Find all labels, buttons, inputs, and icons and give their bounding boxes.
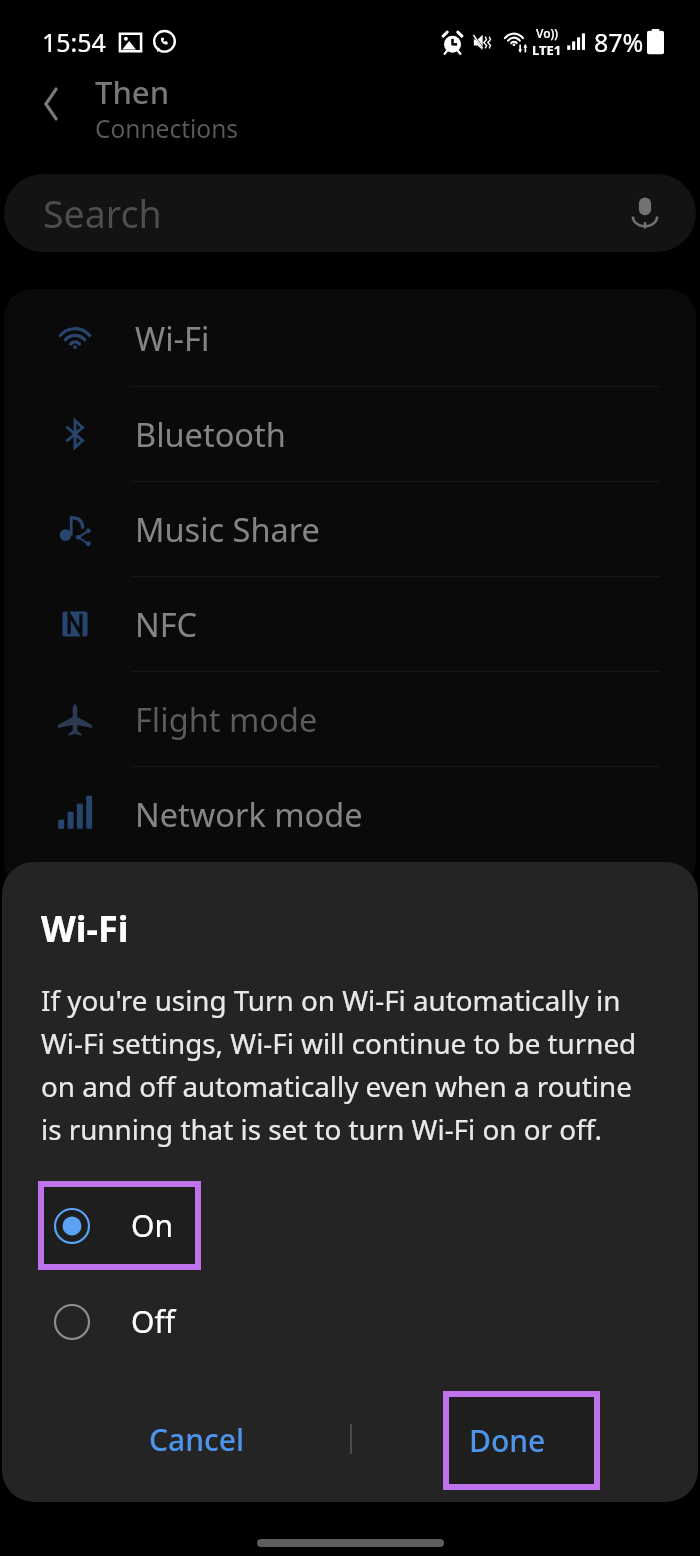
staticText: Network mode [135, 792, 363, 836]
staticText: Music Share [135, 507, 320, 551]
button[interactable]: Flight mode [4, 672, 696, 766]
staticText: On [131, 1205, 173, 1246]
staticText: If you're using Turn on Wi-Fi automatica… [41, 981, 637, 1148]
button[interactable]: Done [443, 1391, 600, 1490]
staticText: Then [95, 71, 170, 113]
staticText: Search [43, 188, 162, 239]
staticText: Flight mode [135, 697, 318, 741]
button[interactable]: Music Share [4, 482, 696, 576]
staticText: Bluetooth [135, 412, 286, 456]
staticText: 87% [594, 25, 644, 59]
button[interactable]: On [38, 1181, 201, 1270]
button[interactable]: Cancel [102, 1391, 292, 1487]
staticText: Wi-Fi [135, 316, 210, 360]
button[interactable]: Off [38, 1277, 298, 1366]
staticText: Off [131, 1301, 176, 1342]
button[interactable]: Network mode [4, 767, 696, 861]
button[interactable]: Back [26, 78, 78, 130]
button[interactable]: Wi-Fi [4, 289, 696, 386]
staticText: 15:54 [42, 25, 106, 59]
staticText: Connections [95, 112, 239, 145]
staticText: NFC [135, 602, 198, 646]
staticText: Cancel [149, 1419, 245, 1460]
staticText: Done [469, 1420, 546, 1461]
button[interactable]: NFC [4, 577, 696, 671]
button[interactable]: Bluetooth [4, 387, 696, 481]
staticText: Wi-Fi [41, 904, 129, 953]
staticText: Vo)) [536, 25, 558, 41]
button[interactable]: Voice search [617, 185, 673, 241]
button[interactable]: Search [4, 174, 696, 252]
staticText: LTE1 [532, 41, 562, 59]
